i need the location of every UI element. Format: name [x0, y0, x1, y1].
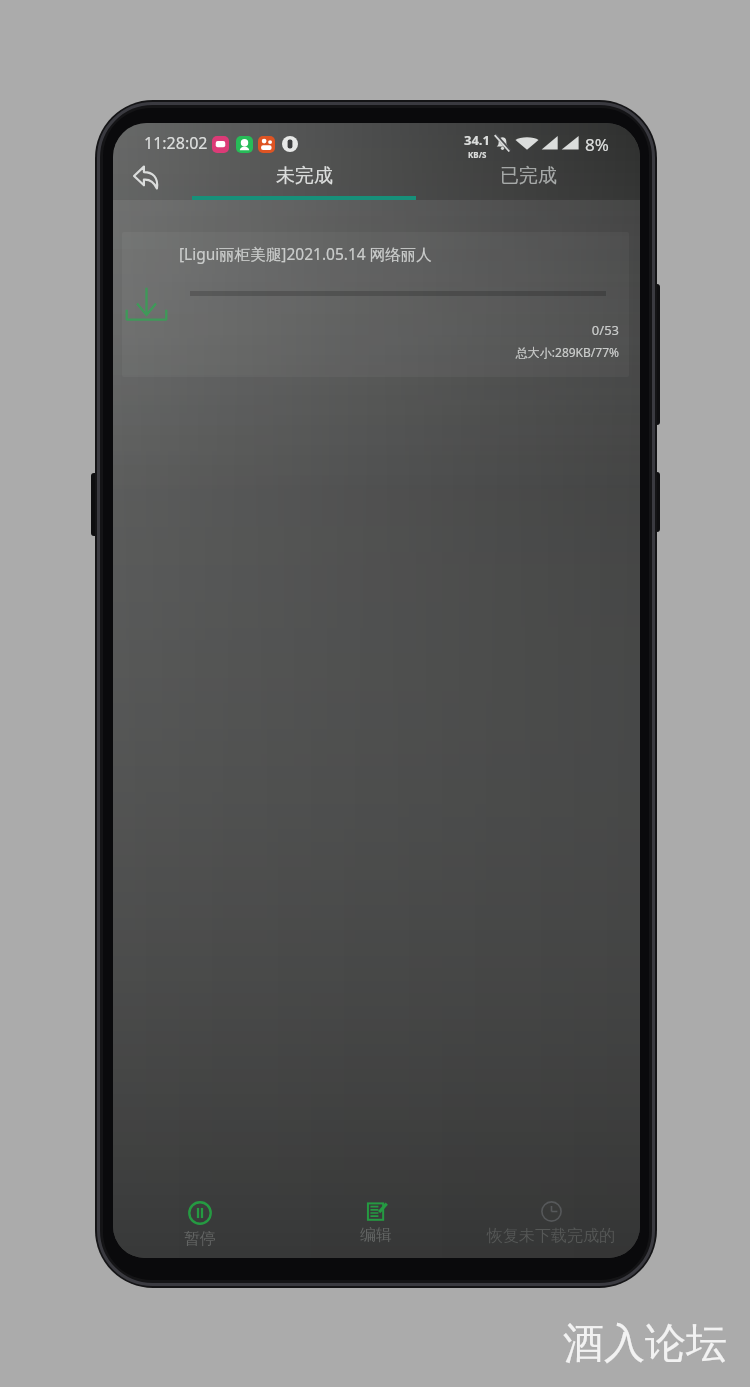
- staticText: 未完成: [276, 164, 333, 188]
- staticText: 8%: [585, 133, 609, 156]
- staticText: 11:28:02: [144, 132, 208, 154]
- staticText: 恢复未下载完成的: [487, 1226, 615, 1246]
- staticText: 已完成: [500, 164, 557, 188]
- staticText: 0/53: [479, 321, 619, 339]
- button[interactable]: [Ligui丽柜美腿]2021.05.14 网络丽人: [122, 232, 629, 377]
- staticText: [Ligui丽柜美腿]2021.05.14 网络丽人: [179, 243, 432, 264]
- staticText: 编辑: [360, 1225, 392, 1245]
- staticText: 总大小:289KB/77%: [419, 344, 619, 360]
- staticText: KB/S: [468, 149, 487, 160]
- staticText: 34.1: [464, 131, 490, 149]
- staticText: 暂停: [184, 1229, 216, 1249]
- staticText: 酒入论坛: [563, 1318, 727, 1370]
- button[interactable]: 未完成: [192, 155, 416, 197]
- button[interactable]: 已完成: [416, 155, 640, 197]
- button[interactable]: 编辑: [301, 1201, 451, 1251]
- button[interactable]: Back: [130, 161, 162, 193]
- button[interactable]: 暂停: [125, 1201, 275, 1251]
- button[interactable]: 恢复未下载完成的: [476, 1201, 626, 1251]
